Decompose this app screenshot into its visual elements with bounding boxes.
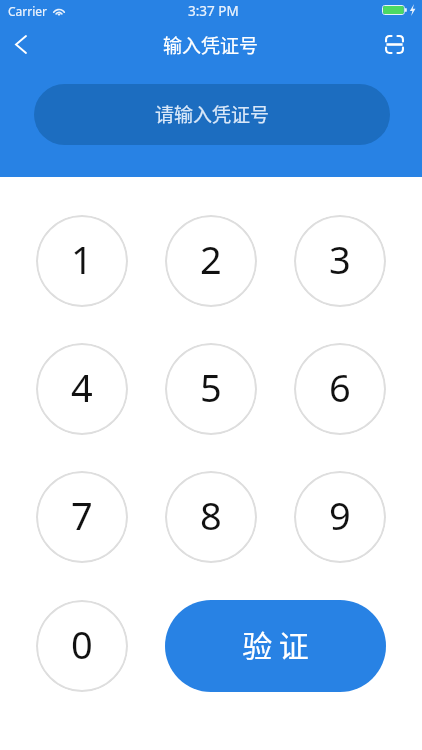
staticText: 请输入凭证号	[155, 100, 270, 128]
button[interactable]: 1	[36, 215, 128, 307]
staticText: 6	[329, 361, 351, 413]
staticText: 2	[200, 233, 222, 285]
staticText: 9	[329, 489, 351, 541]
button[interactable]: 验 证	[165, 600, 386, 692]
button[interactable]: 7	[36, 471, 128, 563]
button[interactable]: Scan	[375, 25, 413, 63]
staticText: 0	[71, 618, 93, 670]
button[interactable]: 8	[165, 471, 257, 563]
staticText: 4	[71, 361, 93, 413]
button[interactable]: 请输入凭证号	[34, 84, 390, 145]
button[interactable]: Back	[1, 24, 41, 64]
button[interactable]: 3	[294, 215, 386, 307]
staticText: 输入凭证号	[163, 31, 259, 59]
staticText: 7	[71, 489, 93, 541]
staticText: 验 证	[242, 622, 309, 665]
button[interactable]: 0	[36, 600, 128, 692]
button[interactable]: 6	[294, 343, 386, 435]
button[interactable]: 9	[294, 471, 386, 563]
staticText: 3	[329, 233, 351, 285]
button[interactable]: 4	[36, 343, 128, 435]
staticText: 1	[71, 233, 93, 285]
button[interactable]: 2	[165, 215, 257, 307]
staticText: Carrier	[8, 3, 48, 19]
staticText: 3:37 PM	[188, 2, 239, 20]
button[interactable]: 5	[165, 343, 257, 435]
staticText: 8	[200, 489, 222, 541]
staticText: 5	[200, 361, 222, 413]
